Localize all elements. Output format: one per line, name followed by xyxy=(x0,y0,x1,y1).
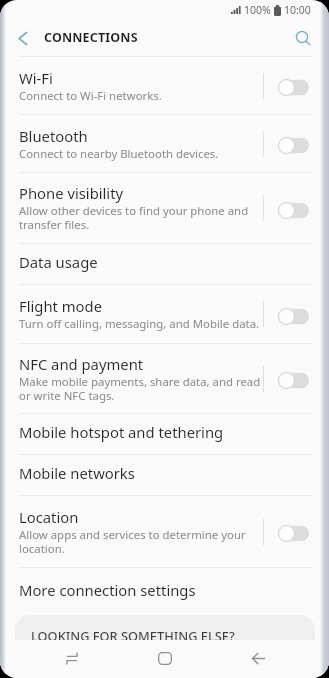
button[interactable]: Toggle xyxy=(264,496,329,567)
button[interactable]: More connection settings xyxy=(0,568,329,615)
button[interactable]: Toggle xyxy=(264,344,329,413)
button[interactable]: NFC and payment xyxy=(0,344,329,413)
staticText: Location xyxy=(19,507,79,527)
button[interactable]: Back xyxy=(235,645,281,672)
button[interactable]: Toggle xyxy=(264,57,329,114)
button[interactable]: Home xyxy=(142,645,188,672)
button[interactable]: LOOKING FOR SOMETHING ELSE? xyxy=(15,615,315,640)
button[interactable]: Recent apps xyxy=(49,645,95,672)
staticText: LOOKING FOR SOMETHING ELSE? xyxy=(31,627,235,640)
staticText: Connect to nearby Bluetooth devices. xyxy=(19,146,219,162)
staticText: 10:00 xyxy=(284,3,311,17)
staticText: Data usage xyxy=(19,252,98,272)
button[interactable]: Toggle xyxy=(264,115,329,172)
staticText: Turn off calling, messaging, and Mobile … xyxy=(19,316,260,332)
staticText: Allow apps and services to determine you… xyxy=(19,527,262,557)
staticText: CONNECTIONS xyxy=(44,29,138,46)
button[interactable]: Location xyxy=(0,496,329,567)
button[interactable]: Wi-Fi xyxy=(0,57,329,114)
staticText: More connection settings xyxy=(19,580,196,600)
staticText: Phone visibility xyxy=(19,183,124,203)
staticText: 100% xyxy=(244,3,271,17)
staticText: NFC and payment xyxy=(19,354,144,374)
button[interactable]: Search xyxy=(287,20,329,56)
staticText: Bluetooth xyxy=(19,126,88,146)
button[interactable]: Back xyxy=(0,20,44,56)
staticText: Wi-Fi xyxy=(19,68,53,88)
staticText: Connect to Wi-Fi networks. xyxy=(19,88,162,104)
button[interactable]: Flight mode xyxy=(0,285,329,343)
staticText: Mobile hotspot and tethering xyxy=(19,422,224,442)
button[interactable]: Mobile networks xyxy=(0,455,329,495)
button[interactable]: Phone visibility xyxy=(0,173,329,243)
staticText: Make mobile payments, share data, and re… xyxy=(19,374,262,404)
button[interactable]: Toggle xyxy=(264,173,329,243)
staticText: Flight mode xyxy=(19,296,102,316)
staticText: Allow other devices to find your phone a… xyxy=(19,203,262,233)
staticText: Mobile networks xyxy=(19,463,135,483)
button[interactable]: Data usage xyxy=(0,244,329,284)
button[interactable]: Mobile hotspot and tethering xyxy=(0,414,329,454)
button[interactable]: Toggle xyxy=(264,285,329,343)
button[interactable]: Bluetooth xyxy=(0,115,329,172)
